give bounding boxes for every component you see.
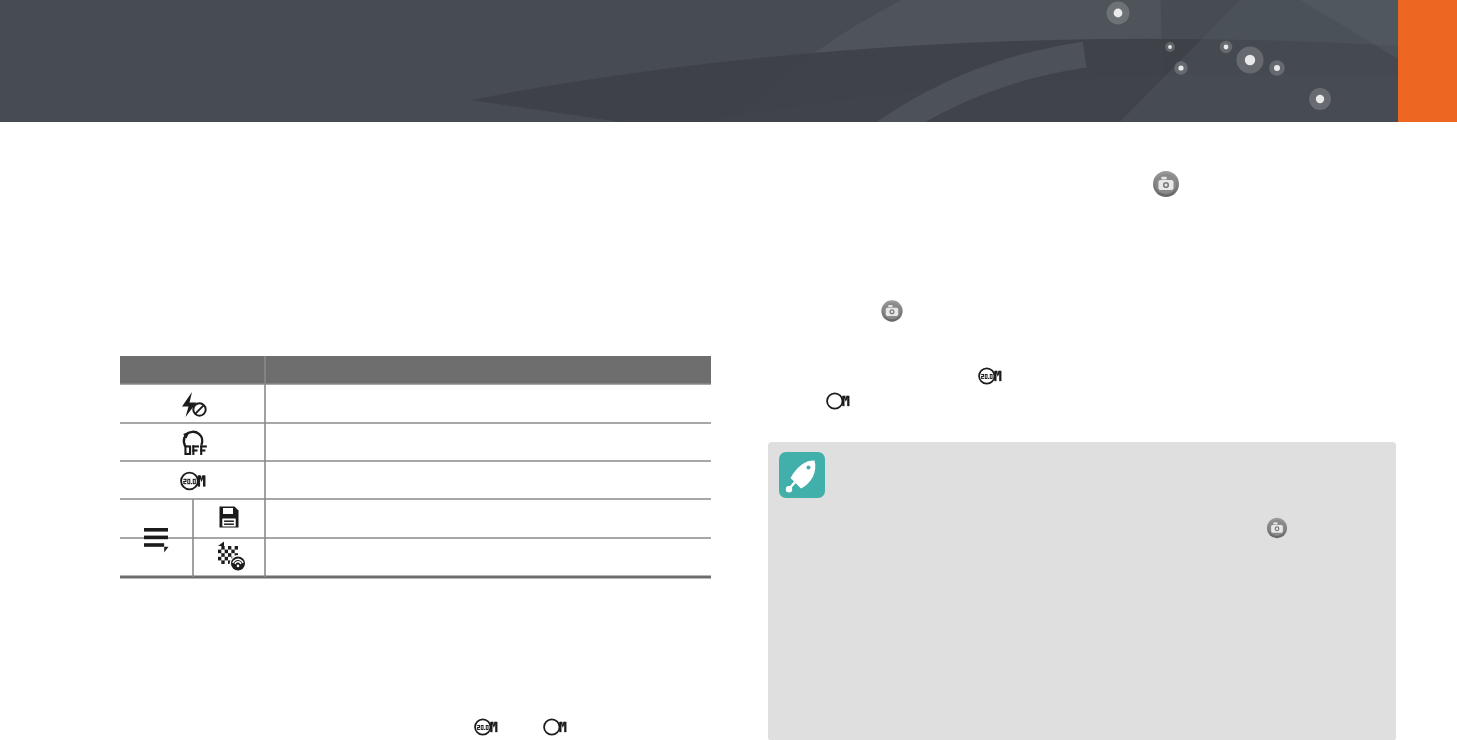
- other: Page banner: [0, 0, 1457, 740]
- button[interactable]: Note callout: [0, 0, 1457, 740]
- other: Inline icons: [0, 0, 1457, 740]
- button[interactable]: Camera options table: [0, 0, 1457, 740]
